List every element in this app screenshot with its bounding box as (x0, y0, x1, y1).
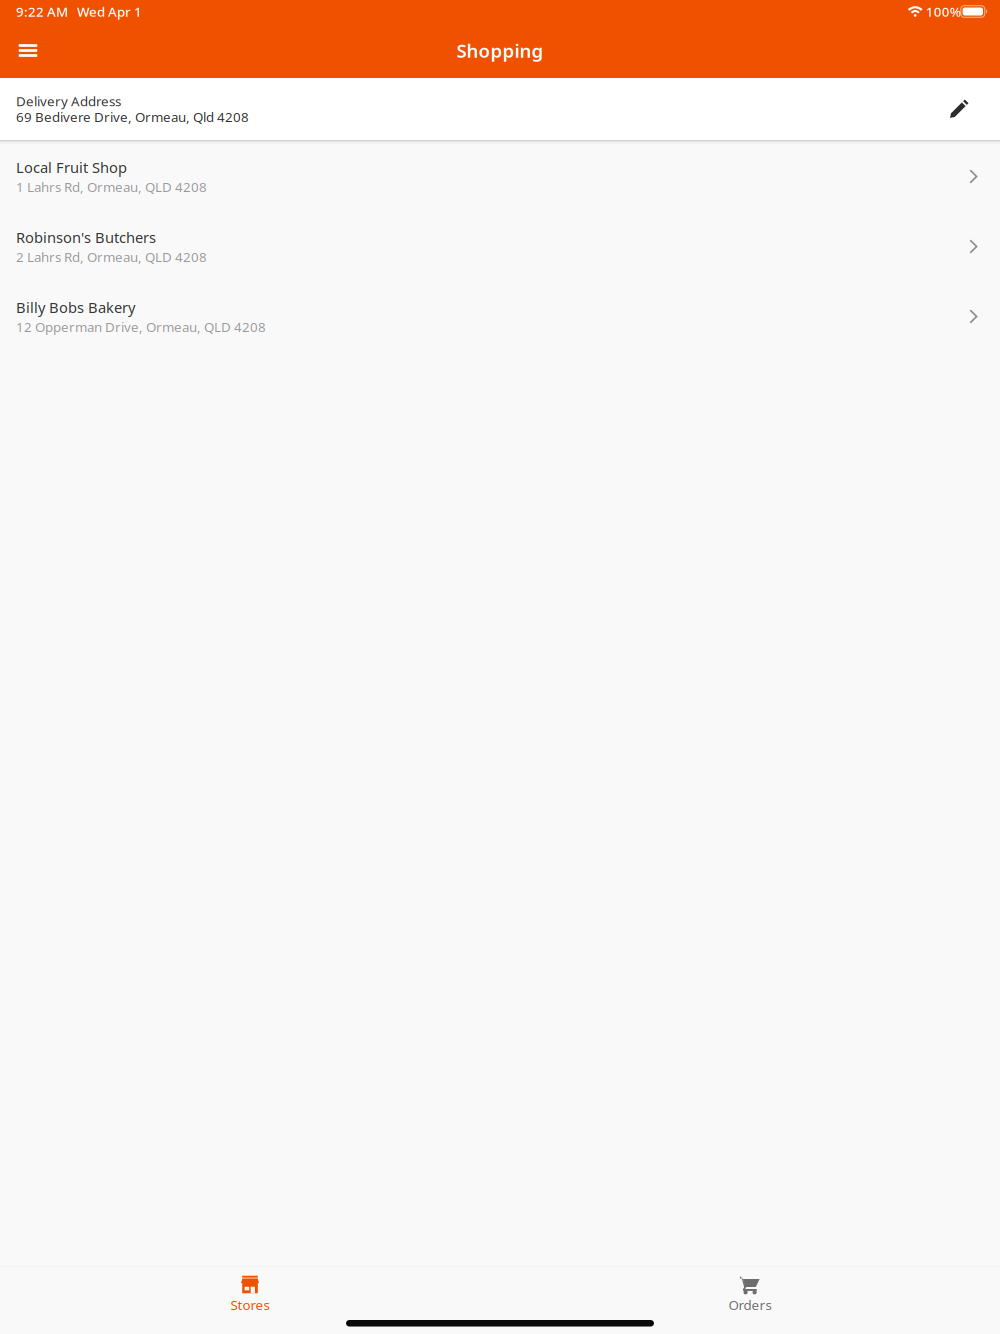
staticText: 69 Bedivere Drive, Ormeau, Qld 4208 (16, 108, 249, 126)
button[interactable]: Robinson's Butchers (0, 212, 1000, 282)
button[interactable]: Menu (5, 28, 51, 72)
button[interactable]: Delivery Address (0, 78, 1000, 140)
staticText: Delivery Address (16, 92, 121, 110)
staticText: 2 Lahrs Rd, Ormeau, QLD 4208 (16, 248, 207, 266)
staticText: 100% (926, 3, 961, 20)
staticText: Wed Apr 1 (77, 3, 142, 20)
staticText: Robinson's Butchers (16, 227, 156, 247)
staticText: 12 Opperman Drive, Ormeau, QLD 4208 (16, 318, 266, 336)
staticText: Local Fruit Shop (16, 157, 127, 177)
staticText: 9:22 AM (16, 3, 68, 20)
staticText: 1 Lahrs Rd, Ormeau, QLD 4208 (16, 178, 207, 196)
button[interactable]: Stores (0, 1267, 500, 1313)
button[interactable]: Billy Bobs Bakery (0, 282, 1000, 352)
staticText: Orders (728, 1296, 771, 1314)
button[interactable]: Local Fruit Shop (0, 142, 1000, 212)
staticText: Stores (230, 1296, 269, 1314)
button[interactable]: Orders (500, 1267, 1000, 1313)
staticText: Shopping (456, 38, 543, 63)
staticText: Billy Bobs Bakery (16, 297, 135, 317)
